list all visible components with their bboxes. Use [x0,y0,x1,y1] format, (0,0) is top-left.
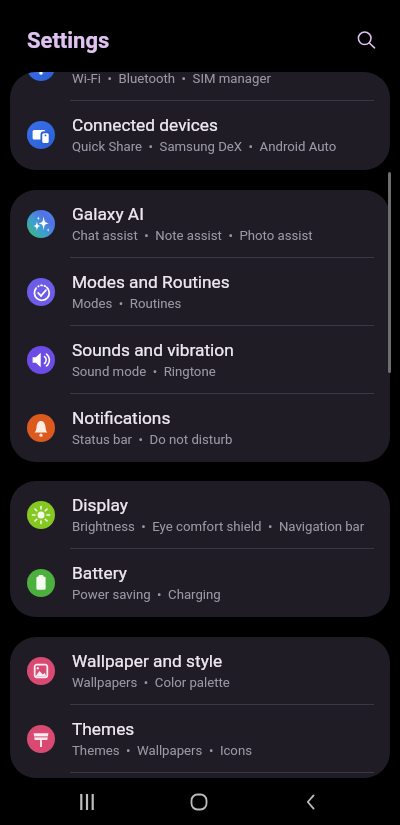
staticText: Status bar • Do not disturb [72,432,233,447]
button[interactable]: Modes and Routines [10,258,390,326]
button[interactable]: Connected devices [10,101,390,169]
button[interactable]: Display [10,481,390,549]
button[interactable]: Wallpaper and style [10,637,390,705]
staticText: Wallpaper and style [72,651,223,671]
button[interactable]: Recent apps [63,778,111,825]
button[interactable]: Search [348,22,382,56]
staticText: Power saving • Charging [72,587,221,602]
staticText: Battery [72,563,127,583]
staticText: Quick Share • Samsung DeX • Android Auto [72,139,337,154]
staticText: Display [72,495,128,515]
button[interactable]: Notifications [10,394,390,462]
staticText: Wi-Fi • Bluetooth • SIM manager [72,72,271,86]
staticText: Sounds and vibration [72,340,234,360]
button[interactable]: Back [287,778,335,825]
staticText: Connected devices [72,115,218,135]
staticText: Modes and Routines [72,272,230,292]
staticText: Wallpapers • Color palette [72,675,230,690]
button[interactable]: Galaxy AI [10,190,390,258]
button[interactable]: Home [175,778,223,825]
staticText: Notifications [72,408,171,428]
button[interactable]: Themes [10,705,390,773]
staticText: Themes • Wallpapers • Icons [72,743,252,758]
staticText: Themes [72,719,135,739]
staticText: Brightness • Eye comfort shield • Naviga… [72,519,365,534]
button[interactable]: Connections [10,72,390,101]
button[interactable]: Battery [10,549,390,617]
staticText: Chat assist • Note assist • Photo assist [72,228,313,243]
staticText: Settings [27,28,110,54]
staticText: Galaxy AI [72,204,144,224]
button[interactable]: Sounds and vibration [10,326,390,394]
staticText: Modes • Routines [72,296,182,311]
staticText: Sound mode • Ringtone [72,364,216,379]
